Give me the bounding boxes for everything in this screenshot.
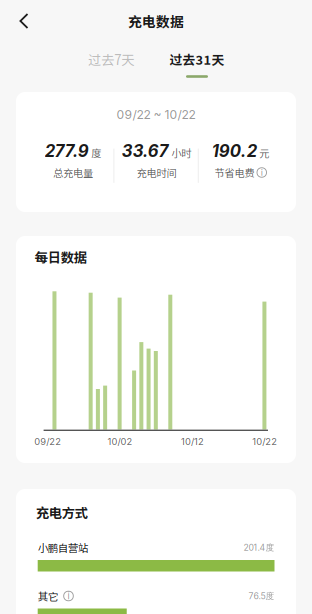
staticText: 10/12 [181,436,204,447]
staticText: 元 [259,145,269,160]
staticText: 过去31天 [169,50,224,68]
staticText: i [67,590,69,602]
button[interactable]: 过去31天 [161,46,233,82]
staticText: 充电方式 [36,502,88,522]
staticText: 小鹏自营站 [38,540,88,555]
button[interactable]: 过去7天 [75,46,147,82]
staticText: 总充电量 [53,165,93,180]
staticText: 201.4度 [243,542,274,553]
staticText: 33.67 [122,141,169,161]
staticText: 节省电费 [214,165,254,180]
staticText: 76.5度 [248,590,274,601]
staticText: 充电时间 [136,165,176,180]
staticText: 充电数据 [128,11,184,31]
staticText: 190.2 [212,141,257,161]
staticText: 其它 [38,588,58,604]
staticText: 度 [91,145,101,160]
staticText: 每日数据 [35,247,87,266]
button[interactable]: 小鹏自营站 [16,489,296,614]
staticText: 10/02 [108,436,133,447]
staticText: 小时 [171,145,191,160]
staticText: 277.9 [45,141,89,161]
staticText: 10/22 [252,436,277,447]
staticText: 过去7天 [88,49,134,69]
staticText: 09/22 [34,436,61,447]
staticText: i [261,167,263,178]
staticText: 09/22 ~ 10/22 [116,107,195,122]
button[interactable]: 其它 [16,489,296,614]
button[interactable]: 返回 [2,0,46,42]
